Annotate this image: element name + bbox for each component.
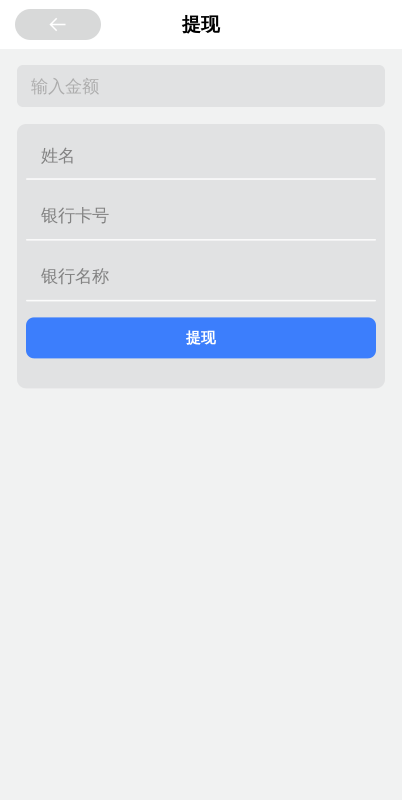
staticText: 输入金额 [31, 76, 99, 97]
button[interactable]: 姓名 [17, 124, 385, 180]
button[interactable]: 提现 [26, 317, 376, 358]
staticText: 提现 [186, 329, 216, 347]
button[interactable]: 银行卡号 [17, 180, 385, 241]
staticText: 姓名 [41, 145, 75, 166]
staticText: 提现 [182, 13, 220, 36]
button[interactable]: Back [15, 9, 101, 40]
staticText: 银行名称 [41, 266, 109, 287]
staticText: 银行卡号 [41, 205, 109, 226]
button[interactable]: 银行名称 [17, 241, 385, 301]
